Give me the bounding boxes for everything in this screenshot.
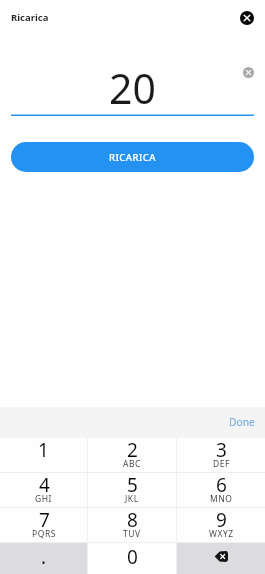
staticText: 1	[38, 437, 49, 463]
staticText: RICARICA	[109, 151, 156, 164]
button[interactable]: 6	[177, 473, 265, 507]
button[interactable]: Done	[219, 412, 265, 432]
button[interactable]: .	[0, 543, 87, 574]
button[interactable]: 4	[0, 473, 87, 507]
button[interactable]: 3	[177, 438, 265, 472]
staticText: 8	[127, 507, 138, 533]
staticText: MNO	[210, 493, 233, 505]
button[interactable]: 5	[88, 473, 176, 507]
button[interactable]: 8	[88, 508, 176, 542]
button[interactable]: 7	[0, 508, 87, 542]
button[interactable]: Close	[240, 11, 254, 25]
staticText: JKL	[125, 493, 139, 505]
staticText: 0	[127, 544, 138, 570]
staticText: 6	[216, 472, 227, 498]
staticText: DEF	[213, 458, 230, 470]
button[interactable]: 1	[0, 438, 87, 472]
button[interactable]: 0	[88, 543, 176, 574]
staticText: ABC	[123, 458, 141, 470]
button[interactable]: RICARICA	[11, 142, 254, 172]
button[interactable]: 2	[88, 438, 176, 472]
staticText: 3	[216, 437, 227, 463]
staticText: WXYZ	[209, 528, 234, 540]
staticText: Ricarica	[11, 11, 49, 24]
staticText: 9	[216, 507, 227, 533]
staticText: 7	[39, 507, 50, 533]
button[interactable]: Clear	[243, 67, 254, 78]
staticText: PQRS	[32, 528, 56, 540]
staticText: Done	[229, 415, 255, 429]
staticText: .	[41, 544, 47, 570]
staticText: TUV	[123, 528, 141, 540]
button[interactable]: Backspace	[177, 543, 265, 574]
staticText: 2	[127, 437, 138, 463]
staticText: 5	[127, 472, 138, 498]
button[interactable]: 9	[177, 508, 265, 542]
staticText: GHI	[35, 493, 53, 505]
staticText: 20	[109, 60, 156, 116]
staticText: 4	[39, 472, 50, 498]
